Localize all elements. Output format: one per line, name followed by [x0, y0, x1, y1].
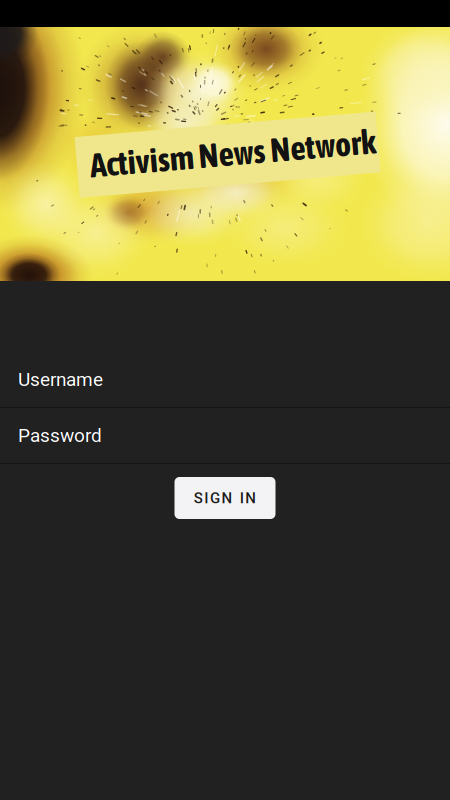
- staticText: Username: [18, 368, 103, 391]
- staticText: SIGN IN: [194, 489, 256, 507]
- button[interactable]: SIGN IN: [174, 477, 275, 519]
- button[interactable]: Username: [0, 352, 450, 408]
- staticText: Password: [18, 424, 102, 447]
- button[interactable]: Password: [0, 408, 450, 464]
- staticText: Activism News Network: [89, 134, 376, 173]
